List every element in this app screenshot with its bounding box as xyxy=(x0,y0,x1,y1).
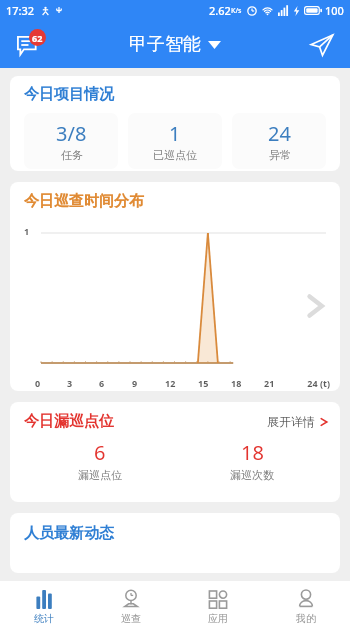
staticText: 12 xyxy=(165,377,198,389)
staticText: 1 xyxy=(169,120,181,147)
staticText: 应用 xyxy=(208,612,228,625)
staticText: 18 xyxy=(241,439,264,466)
staticText: 1 xyxy=(24,225,30,237)
staticText: 24 xyxy=(268,120,291,147)
staticText: 9 xyxy=(132,377,165,389)
staticText: 17:32 xyxy=(6,3,35,18)
button[interactable]: Messages xyxy=(8,25,48,65)
button[interactable]: Next chart xyxy=(298,289,332,323)
staticText: 6 xyxy=(94,439,106,466)
button[interactable]: 甲子智能 xyxy=(129,33,221,56)
staticText: K/s xyxy=(231,6,242,16)
staticText: 今日巡查时间分布 xyxy=(24,192,144,211)
button[interactable]: 24 xyxy=(232,113,326,169)
staticText: 今日漏巡点位 xyxy=(24,412,114,431)
staticText: 6 xyxy=(99,377,132,389)
button[interactable]: 1 xyxy=(128,113,222,169)
button[interactable]: 展开详情 xyxy=(267,414,328,429)
staticText: 展开详情 xyxy=(267,414,315,429)
button[interactable]: 我的 xyxy=(262,581,350,633)
staticText: 巡查 xyxy=(121,612,141,625)
staticText: 漏巡次数 xyxy=(230,468,274,482)
staticText: 18 xyxy=(231,377,264,389)
staticText: 统计 xyxy=(34,612,54,625)
staticText: 人员最新动态 xyxy=(24,524,114,543)
staticText: 0 xyxy=(35,377,67,389)
staticText: 漏巡点位 xyxy=(78,468,122,482)
button[interactable]: 巡查 xyxy=(87,581,174,633)
staticText: 3/8 xyxy=(56,120,87,147)
staticText: 62 xyxy=(32,32,43,44)
staticText: 已巡点位 xyxy=(153,148,197,162)
button[interactable]: 统计 xyxy=(0,581,87,633)
staticText: 3 xyxy=(67,377,99,389)
staticText: 21 xyxy=(264,377,297,389)
staticText: 2.62 xyxy=(209,3,231,18)
button[interactable]: Send xyxy=(302,25,342,65)
staticText: 今日项目情况 xyxy=(24,85,114,104)
staticText: 我的 xyxy=(296,612,316,625)
staticText: 异常 xyxy=(269,148,291,162)
staticText: 甲子智能 xyxy=(129,33,201,56)
button[interactable]: 3/8 xyxy=(24,113,118,169)
staticText: 任务 xyxy=(61,148,83,162)
staticText: 100 xyxy=(325,3,344,18)
button[interactable]: 应用 xyxy=(174,581,262,633)
staticText: 24 (t) xyxy=(297,377,330,389)
staticText: 15 xyxy=(198,377,231,389)
